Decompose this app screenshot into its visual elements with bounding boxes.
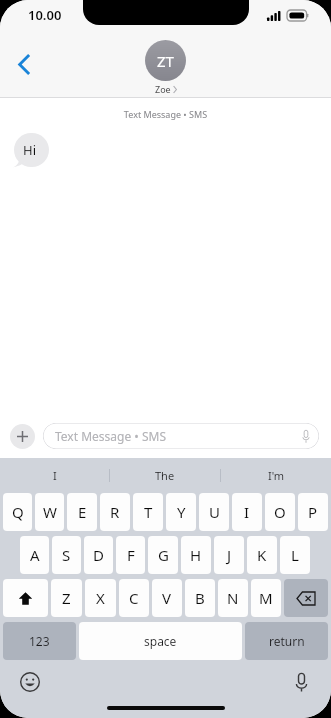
staticText: Y (177, 502, 186, 522)
staticText: Z (62, 588, 71, 608)
staticText: P (308, 502, 318, 522)
staticText: I'm (268, 468, 285, 483)
staticText: Hi (23, 141, 36, 159)
staticText: R (110, 502, 120, 522)
button[interactable]: Y (166, 493, 196, 531)
button[interactable]: E (67, 493, 97, 531)
button[interactable]: O (265, 493, 295, 531)
button[interactable]: I'm (221, 458, 331, 493)
staticText: ZT (157, 51, 174, 71)
staticText: S (62, 545, 71, 565)
staticText: J (227, 545, 232, 565)
staticText: B (195, 588, 205, 608)
staticText: H (190, 545, 202, 565)
button[interactable]: N (218, 579, 248, 617)
button[interactable]: The (110, 458, 220, 493)
button[interactable]: R (100, 493, 130, 531)
button[interactable]: F (116, 536, 145, 574)
button[interactable]: Add attachment (10, 424, 35, 449)
button[interactable]: I (0, 458, 109, 493)
staticText: 10.00 (28, 6, 62, 24)
staticText: X (96, 588, 105, 608)
button[interactable]: Z (51, 579, 82, 617)
button[interactable]: U (199, 493, 229, 531)
staticText: Zoe (155, 83, 171, 95)
button[interactable]: Shift (3, 579, 48, 617)
button[interactable]: W (35, 493, 64, 531)
staticText: N (227, 588, 239, 608)
staticText: T (144, 502, 153, 522)
staticText: return (269, 633, 305, 649)
button[interactable]: ZT (145, 40, 186, 95)
staticText: W (43, 502, 57, 522)
button[interactable]: Backspace (284, 579, 328, 617)
button[interactable]: space (79, 622, 242, 660)
staticText: Q (12, 502, 24, 522)
button[interactable]: Q (3, 493, 32, 531)
staticText: D (93, 545, 104, 565)
staticText: E (78, 502, 87, 522)
button[interactable]: H (181, 536, 211, 574)
button[interactable]: A (20, 536, 49, 574)
button[interactable]: 123 (3, 622, 76, 660)
button[interactable]: T (133, 493, 163, 531)
button[interactable]: B (185, 579, 215, 617)
button[interactable]: Back (6, 46, 42, 82)
button[interactable]: I (232, 493, 262, 531)
staticText: 123 (29, 633, 50, 649)
button[interactable]: J (214, 536, 244, 574)
button[interactable]: X (85, 579, 116, 617)
staticText: F (127, 545, 135, 565)
button[interactable]: S (52, 536, 81, 574)
staticText: space (144, 633, 177, 649)
button[interactable]: L (280, 536, 310, 574)
button[interactable]: M (251, 579, 281, 617)
button[interactable]: P (298, 493, 328, 531)
staticText: I (53, 468, 57, 483)
staticText: A (30, 545, 40, 565)
staticText: V (162, 588, 172, 608)
staticText: I (244, 502, 250, 522)
staticText: L (291, 545, 299, 565)
staticText: U (209, 502, 220, 522)
button[interactable]: D (84, 536, 113, 574)
staticText: The (155, 468, 175, 483)
button[interactable]: Dictation (287, 668, 315, 696)
staticText: O (274, 502, 286, 522)
button[interactable]: G (148, 536, 178, 574)
button[interactable]: C (119, 579, 149, 617)
button[interactable]: K (247, 536, 277, 574)
staticText: M (259, 588, 273, 608)
button[interactable]: Text Message • SMS (43, 423, 319, 449)
staticText: C (129, 588, 139, 608)
button[interactable]: Emoji (16, 668, 44, 696)
staticText: G (158, 545, 169, 565)
button[interactable]: V (152, 579, 182, 617)
button[interactable]: return (245, 622, 328, 660)
staticText: Text Message • SMS (55, 428, 167, 444)
staticText: K (257, 545, 267, 565)
staticText: Text Message • SMS (0, 108, 331, 120)
